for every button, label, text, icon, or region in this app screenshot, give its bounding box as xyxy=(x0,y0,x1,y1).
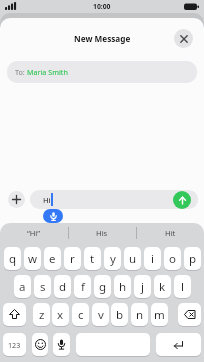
button[interactable]: i xyxy=(144,247,161,270)
button[interactable]: His xyxy=(68,224,136,242)
staticText: x xyxy=(57,307,64,323)
staticText: k xyxy=(159,279,166,295)
button[interactable] xyxy=(174,29,193,48)
button[interactable] xyxy=(53,333,70,356)
button[interactable]: s xyxy=(34,275,51,298)
staticText: 10:00 xyxy=(93,2,111,11)
staticText: i xyxy=(151,251,154,267)
staticText: o xyxy=(169,251,176,267)
button[interactable]: “Hi” xyxy=(0,224,68,242)
staticText: Hit xyxy=(165,228,176,238)
staticText: His xyxy=(96,228,108,238)
button[interactable]: g xyxy=(94,275,111,298)
button[interactable]: w xyxy=(24,247,41,270)
button[interactable]: x xyxy=(52,303,69,326)
button[interactable]: o xyxy=(164,247,181,270)
button[interactable]: u xyxy=(124,247,141,270)
button[interactable] xyxy=(76,333,150,356)
staticText: d xyxy=(59,279,67,295)
button[interactable]: a xyxy=(14,275,31,298)
button[interactable] xyxy=(156,333,201,356)
button[interactable] xyxy=(30,190,198,209)
button[interactable]: b xyxy=(111,303,128,326)
button[interactable] xyxy=(8,191,25,208)
staticText: u xyxy=(129,251,137,267)
staticText: c xyxy=(78,307,84,323)
button[interactable]: v xyxy=(92,303,109,326)
staticText: n xyxy=(136,307,144,323)
button[interactable]: 123 xyxy=(3,333,26,356)
button[interactable] xyxy=(173,191,191,209)
staticText: g xyxy=(99,279,107,295)
staticText: y xyxy=(110,251,116,267)
button[interactable]: n xyxy=(131,303,148,326)
staticText: h xyxy=(119,279,127,295)
staticText: Hi xyxy=(43,195,51,205)
staticText: m xyxy=(154,307,165,323)
button[interactable] xyxy=(178,303,201,326)
staticText: r xyxy=(70,251,75,267)
staticText: b xyxy=(116,307,124,323)
staticText: To: xyxy=(15,67,27,77)
staticText: New Message xyxy=(74,33,131,44)
staticText: w xyxy=(28,251,38,267)
button[interactable]: d xyxy=(54,275,71,298)
staticText: q xyxy=(9,251,17,267)
button[interactable]: q xyxy=(4,247,21,270)
button[interactable]: t xyxy=(84,247,101,270)
button[interactable]: To: xyxy=(7,61,197,83)
staticText: s xyxy=(40,279,46,295)
button[interactable]: y xyxy=(104,247,121,270)
button[interactable]: l xyxy=(174,275,191,298)
button[interactable] xyxy=(32,333,48,356)
staticText: “Hi” xyxy=(27,228,41,238)
button[interactable] xyxy=(3,303,26,326)
button[interactable]: z xyxy=(33,303,50,326)
staticText: z xyxy=(39,307,45,323)
button[interactable]: m xyxy=(151,303,168,326)
button[interactable]: f xyxy=(74,275,91,298)
staticText: 123 xyxy=(8,340,21,350)
button[interactable]: c xyxy=(72,303,89,326)
staticText: t xyxy=(90,251,95,267)
staticText: a xyxy=(19,279,26,295)
staticText: e xyxy=(49,251,56,267)
staticText: p xyxy=(189,251,197,267)
button[interactable]: r xyxy=(64,247,81,270)
button[interactable]: h xyxy=(114,275,131,298)
staticText: f xyxy=(81,279,85,295)
staticText: l xyxy=(181,279,184,295)
button[interactable] xyxy=(43,209,63,223)
button[interactable]: Hit xyxy=(136,224,204,242)
button[interactable]: k xyxy=(154,275,171,298)
staticText: v xyxy=(98,307,104,323)
button[interactable]: p xyxy=(184,247,201,270)
button[interactable]: e xyxy=(44,247,61,270)
staticText: j xyxy=(141,279,144,295)
staticText: Maria Smith xyxy=(27,67,68,77)
button[interactable]: j xyxy=(134,275,151,298)
